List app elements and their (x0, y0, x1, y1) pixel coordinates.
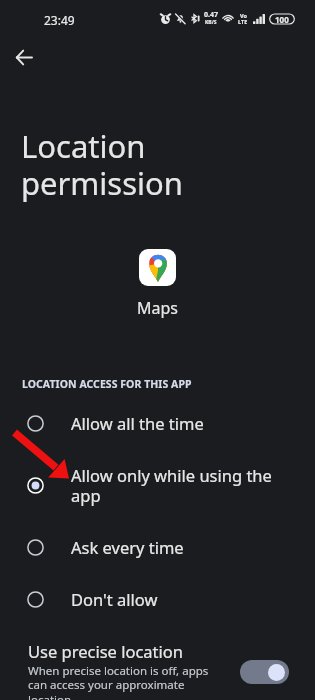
staticText: LTE (238, 18, 248, 25)
staticText: Ask every time (71, 536, 184, 558)
staticText: 0.47 (204, 10, 218, 20)
staticText: Allow all the time (71, 412, 204, 434)
staticText: Allow only while using the app (71, 464, 290, 507)
staticText: When precise location is off, apps can a… (28, 663, 209, 700)
staticText: Use precise location (28, 640, 183, 662)
staticText: 100 (275, 14, 289, 25)
button[interactable]: Allow all the time (0, 397, 315, 449)
staticText: Vo (240, 12, 247, 19)
button[interactable]: Back (2, 35, 46, 79)
staticText: Don't allow (71, 588, 158, 610)
button[interactable]: Allow only while using the app (0, 449, 315, 521)
button[interactable]: Use precise location (240, 660, 289, 684)
staticText: 23:49 (44, 12, 75, 28)
staticText: Location permission (21, 125, 183, 204)
button[interactable]: Don't allow (0, 573, 315, 625)
staticText: LOCATION ACCESS FOR THIS APP (22, 377, 192, 391)
button[interactable]: Use precise location (0, 640, 315, 700)
staticText: KB/S (205, 19, 217, 26)
button[interactable]: Ask every time (0, 521, 315, 573)
staticText: Maps (137, 297, 178, 319)
